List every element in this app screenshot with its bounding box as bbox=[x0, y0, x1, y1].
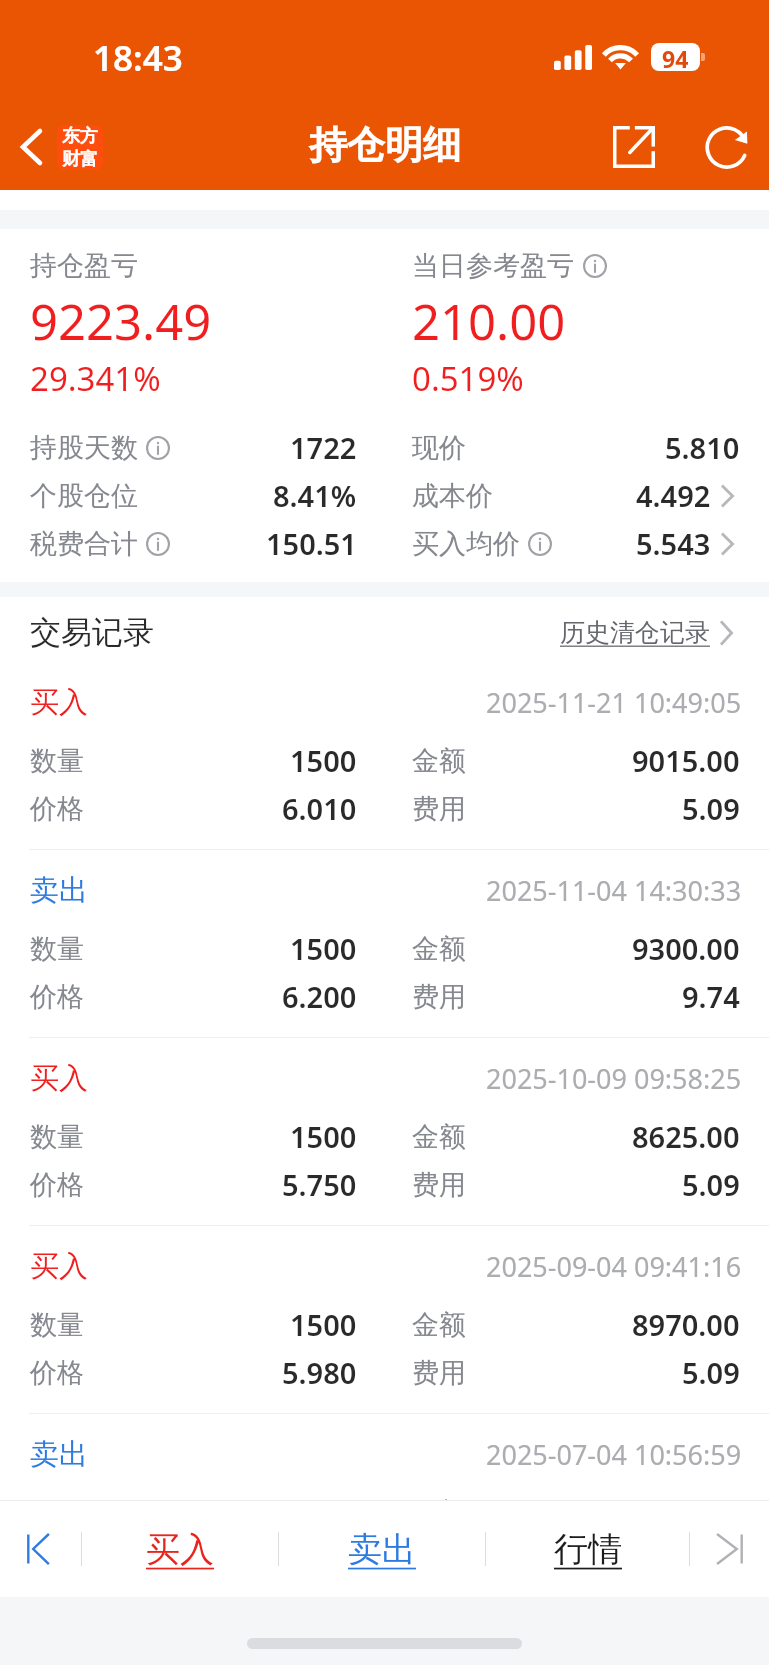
staticText: 财富 bbox=[62, 148, 98, 170]
staticText: 买入 bbox=[30, 1248, 88, 1285]
staticText: 金额 bbox=[412, 1120, 466, 1154]
button[interactable]: 买入 bbox=[82, 1501, 278, 1597]
staticText: 2025-11-04 14:30:33 bbox=[486, 872, 742, 909]
staticText: 费用 bbox=[412, 1168, 466, 1202]
staticText: 数量 bbox=[30, 1120, 84, 1154]
staticText: 价格 bbox=[30, 980, 84, 1014]
staticText: 买入均价 bbox=[412, 527, 520, 561]
staticText: 费用 bbox=[412, 1356, 466, 1390]
button[interactable]: 刷新 bbox=[695, 104, 769, 187]
button[interactable]: 分享 bbox=[601, 104, 695, 186]
staticText: 卖出 bbox=[30, 872, 88, 909]
staticText: 东方 bbox=[62, 125, 98, 148]
staticText: 税费合计 bbox=[30, 527, 138, 561]
staticText: 8625.00 bbox=[632, 1117, 740, 1156]
staticText: 行情 bbox=[554, 1528, 622, 1571]
staticText: 金额 bbox=[412, 1496, 466, 1530]
staticText: 价格 bbox=[30, 1168, 84, 1202]
staticText: 6.200 bbox=[282, 977, 357, 1016]
staticText: 2025-10-09 09:58:25 bbox=[486, 1060, 742, 1097]
staticText: 8970.00 bbox=[632, 1305, 740, 1344]
staticText: 现价 bbox=[412, 431, 466, 465]
staticText: 5.09 bbox=[682, 1541, 740, 1580]
staticText: 当日参考盈亏 bbox=[412, 249, 574, 283]
button[interactable]: 返回 东方财富 bbox=[0, 100, 113, 190]
staticText: 0.519% bbox=[412, 356, 524, 401]
staticText: 价格 bbox=[30, 1356, 84, 1390]
staticText: 成本价 bbox=[412, 479, 493, 513]
staticText: 5.980 bbox=[282, 1353, 357, 1392]
staticText: 卖出 bbox=[30, 1436, 88, 1473]
staticText: 卖出 bbox=[348, 1528, 416, 1571]
staticText: 费用 bbox=[412, 1544, 466, 1578]
button[interactable]: 卖出 bbox=[279, 1501, 485, 1597]
staticText: 金额 bbox=[412, 744, 466, 778]
staticText: 持股天数 bbox=[30, 431, 138, 465]
staticText: 数量 bbox=[30, 1308, 84, 1342]
button[interactable]: 下一个 bbox=[690, 1501, 769, 1597]
button[interactable]: 行情 bbox=[486, 1501, 689, 1597]
staticText: 数量 bbox=[30, 1496, 84, 1530]
staticText: 4.492 bbox=[636, 476, 711, 515]
staticText: 1500 bbox=[290, 741, 357, 780]
staticText: 历史清仓记录 bbox=[560, 617, 710, 648]
staticText: 210.00 bbox=[412, 288, 566, 355]
staticText: 18:43 bbox=[93, 34, 183, 82]
staticText: 5.750 bbox=[282, 1165, 357, 1204]
staticText: 9000.00 bbox=[632, 1493, 740, 1532]
staticText: 买入 bbox=[30, 684, 88, 721]
staticText: 价格 bbox=[30, 792, 84, 826]
staticText: 2025-09-04 09:41:16 bbox=[486, 1248, 742, 1285]
staticText: 1722 bbox=[290, 428, 357, 467]
staticText: 交易记录 bbox=[30, 613, 154, 652]
staticText: 5.09 bbox=[682, 789, 740, 828]
staticText: 94 bbox=[662, 43, 689, 71]
staticText: 9300.00 bbox=[632, 929, 740, 968]
staticText: 5.09 bbox=[682, 1165, 740, 1204]
staticText: 买入 bbox=[30, 1060, 88, 1097]
button[interactable]: 历史清仓记录 bbox=[560, 617, 737, 648]
staticText: 费用 bbox=[412, 980, 466, 1014]
staticText: 2025-11-21 10:49:05 bbox=[486, 684, 742, 721]
staticText: 9.74 bbox=[682, 977, 740, 1016]
staticText: 费用 bbox=[412, 792, 466, 826]
staticText: 数量 bbox=[30, 932, 84, 966]
staticText: 1500 bbox=[290, 1493, 357, 1532]
staticText: 5.09 bbox=[682, 1353, 740, 1392]
staticText: 150.51 bbox=[266, 524, 357, 563]
staticText: 价格 bbox=[30, 1544, 84, 1578]
staticText: 金额 bbox=[412, 1308, 466, 1342]
staticText: 9223.49 bbox=[30, 288, 212, 355]
staticText: 5.543 bbox=[636, 524, 711, 563]
staticText: 6.010 bbox=[282, 789, 357, 828]
staticText: 1500 bbox=[290, 929, 357, 968]
staticText: 买入 bbox=[146, 1528, 214, 1571]
staticText: 29.341% bbox=[30, 356, 161, 401]
staticText: 持仓盈亏 bbox=[30, 249, 138, 283]
staticText: 持仓明细 bbox=[309, 121, 461, 169]
staticText: 9015.00 bbox=[632, 741, 740, 780]
staticText: 1500 bbox=[290, 1305, 357, 1344]
staticText: 6.000 bbox=[282, 1541, 357, 1580]
staticText: 1500 bbox=[290, 1117, 357, 1156]
staticText: 5.810 bbox=[665, 428, 740, 467]
staticText: 2025-07-04 10:56:59 bbox=[486, 1436, 742, 1473]
button[interactable]: 上一个 bbox=[0, 1501, 81, 1597]
staticText: 8.41% bbox=[273, 476, 357, 515]
staticText: 个股仓位 bbox=[30, 479, 138, 513]
staticText: 数量 bbox=[30, 744, 84, 778]
staticText: 金额 bbox=[412, 932, 466, 966]
